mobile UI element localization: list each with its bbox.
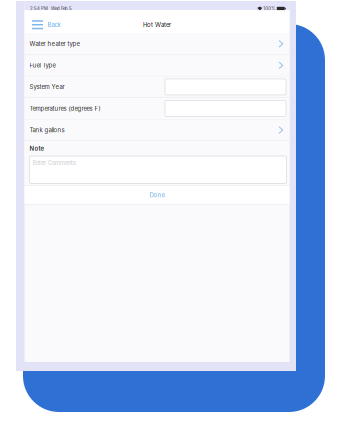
button[interactable]: Back [24,13,64,36]
staticText: Tank gallons [29,126,64,134]
staticText: Hot Water [143,21,171,28]
staticText: Done [149,191,164,199]
button[interactable]: Fuel Type [24,55,289,76]
staticText: Enter Comments [33,160,76,166]
button[interactable]: Tank gallons [24,119,289,141]
staticText: Note [29,145,44,152]
staticText: 100% [262,6,275,11]
button[interactable]: Done [24,186,289,204]
staticText: 2:54 PM Wed Feb 5 [30,6,72,11]
staticText: System Year [29,83,64,91]
staticText: Temperatures (degrees F) [29,105,100,112]
staticText: Back [47,21,60,28]
button[interactable]: Water heater type [24,33,289,54]
staticText: Water heater type [29,40,79,47]
staticText: Fuel Type [29,62,55,69]
